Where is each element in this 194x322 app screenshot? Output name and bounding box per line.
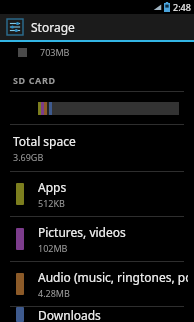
staticText: Downloads [38, 307, 101, 322]
staticText: Audio (music, ringtones, po [38, 269, 188, 285]
button[interactable]: Apps [0, 172, 194, 216]
staticText: 2:48 [173, 1, 191, 13]
staticText: 703MB [40, 46, 70, 58]
staticText: 102MB [38, 242, 68, 254]
other: Settings [7, 19, 23, 35]
staticText: 3.69GB [13, 151, 44, 163]
staticText: Apps [38, 179, 67, 195]
staticText: 4.28MB [38, 287, 70, 299]
staticText: SD CARD [13, 74, 56, 86]
staticText: Total space [13, 133, 76, 149]
button[interactable]: Total space [0, 133, 194, 163]
staticText: Pictures, videos [38, 224, 126, 240]
button[interactable]: Pictures, videos [0, 217, 194, 261]
button[interactable]: 703MB [0, 42, 194, 62]
staticText: 512KB [38, 197, 65, 209]
button[interactable]: Audio (music, ringtones, po [0, 262, 194, 306]
staticText: Storage [31, 19, 75, 35]
button[interactable]: Settings [0, 14, 194, 40]
button[interactable]: Downloads [0, 307, 194, 322]
